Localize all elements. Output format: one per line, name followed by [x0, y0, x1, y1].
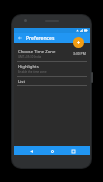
staticText: Preferences: [26, 35, 55, 42]
staticText: GMT+05:30 India: [18, 55, 42, 59]
staticText: Highlights: [18, 63, 39, 69]
button[interactable]: Home: [48, 147, 56, 155]
button[interactable]: Recent apps: [69, 147, 77, 155]
button[interactable]: Highlights: [14, 62, 90, 75]
staticText: Enable the time zone: [18, 70, 47, 74]
button[interactable]: Choose Time Zone: [14, 47, 90, 60]
staticText: List: [18, 78, 25, 84]
button[interactable]: List: [14, 77, 90, 85]
staticText: 3:30 PM: [73, 51, 86, 56]
button[interactable]: Back: [27, 147, 35, 155]
button[interactable]: Add: [73, 37, 84, 48]
button[interactable]: Navigate up: [16, 34, 24, 42]
staticText: Choose Time Zone: [18, 48, 56, 54]
